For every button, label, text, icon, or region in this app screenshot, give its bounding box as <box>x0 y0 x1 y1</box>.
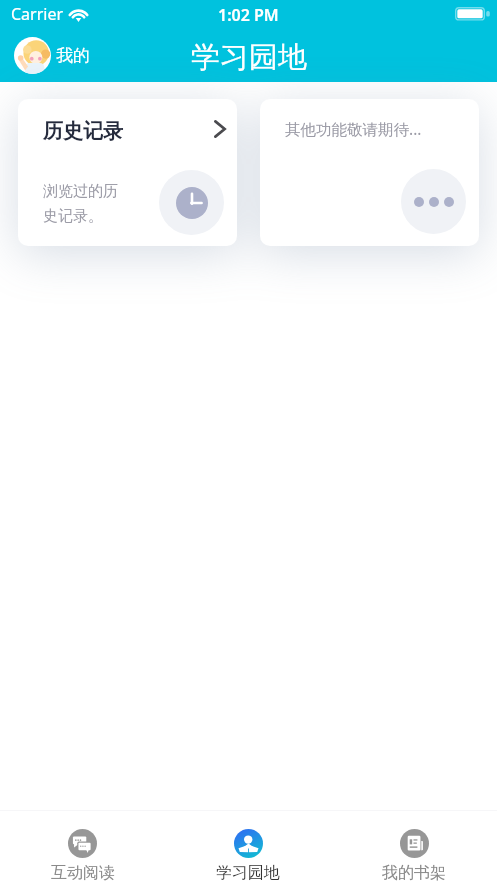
staticText: Carrier <box>11 3 64 25</box>
staticText: 浏览过的历史记录。 <box>43 182 123 225</box>
staticText: 学习园地 <box>216 863 280 883</box>
staticText: 互动阅读 <box>51 863 115 883</box>
staticText: 学习园地 <box>191 39 307 76</box>
button[interactable]: 其他功能敬请期待... <box>260 99 479 246</box>
button[interactable]: 学习园地 <box>165 811 331 883</box>
button[interactable]: 历史记录 <box>18 99 237 246</box>
staticText: 我的 <box>56 45 90 66</box>
button[interactable]: 我的书架 <box>331 811 497 883</box>
button[interactable]: 我的 <box>14 37 90 74</box>
staticText: 其他功能敬请期待... <box>285 118 422 139</box>
staticText: 我的书架 <box>382 863 446 883</box>
staticText: 1:02 PM <box>218 4 279 26</box>
button[interactable]: 互动阅读 <box>0 811 165 883</box>
staticText: 历史记录 <box>43 119 123 144</box>
